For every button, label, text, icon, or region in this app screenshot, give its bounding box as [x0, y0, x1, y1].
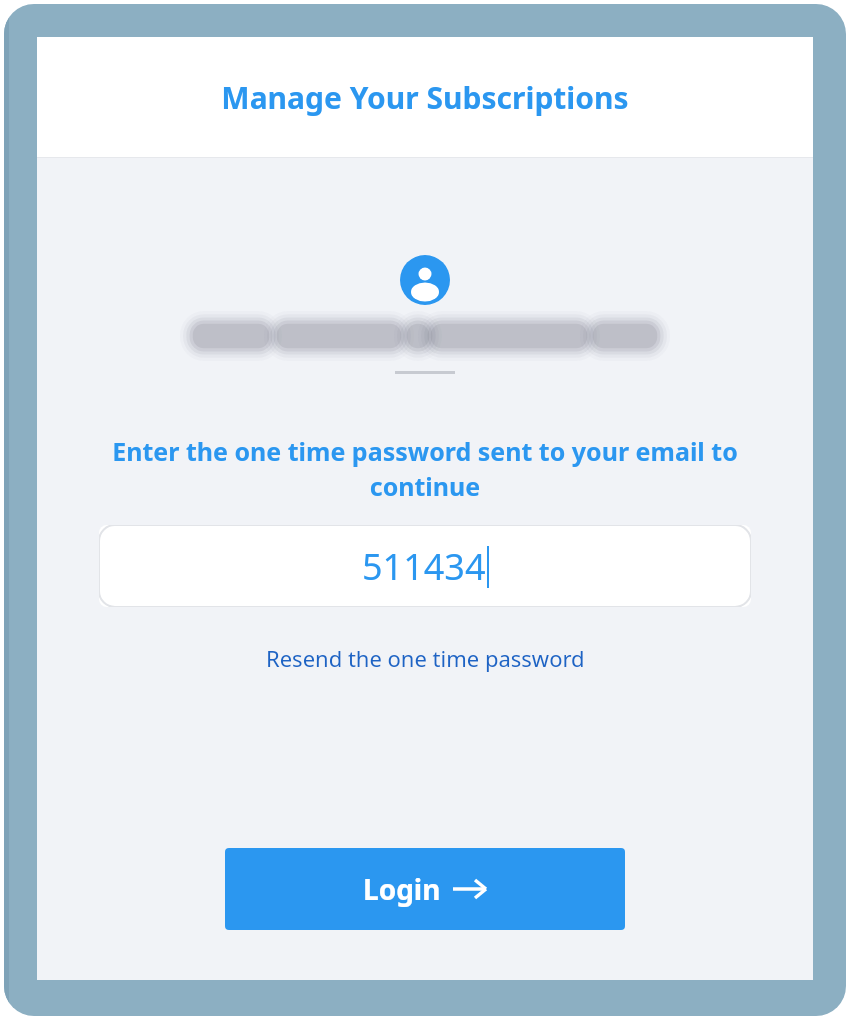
- staticText: Login: [363, 870, 441, 908]
- button[interactable]: Login: [225, 848, 625, 930]
- staticText: 511434: [362, 542, 486, 591]
- button[interactable]: 511434: [99, 525, 751, 607]
- button[interactable]: Resend the one time password: [258, 637, 593, 679]
- staticText: Enter the one time password sent to your…: [67, 434, 783, 504]
- staticText: Resend the one time password: [266, 643, 585, 673]
- staticText: Manage Your Subscriptions: [221, 77, 629, 118]
- button[interactable]: Account: [400, 255, 450, 305]
